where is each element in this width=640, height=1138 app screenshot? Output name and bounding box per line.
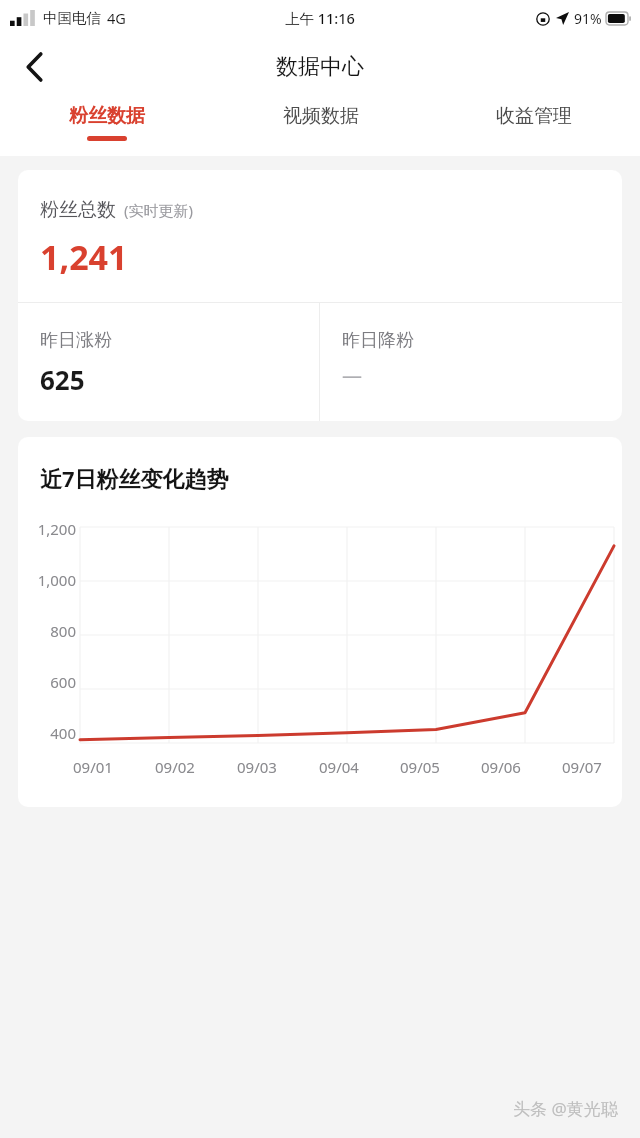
- staticText: 09/05: [400, 757, 440, 777]
- staticText: 收益管理: [496, 104, 572, 128]
- staticText: 1,000: [37, 570, 76, 590]
- staticText: 头条 @黄光聪: [513, 1097, 618, 1120]
- staticText: (实时更新): [124, 200, 194, 220]
- staticText: 昨日降粉: [342, 329, 414, 352]
- staticText: 近7日粉丝变化趋势: [40, 463, 229, 493]
- staticText: 粉丝总数: [40, 198, 116, 222]
- staticText: 09/01: [73, 757, 113, 777]
- staticText: 1,200: [37, 519, 76, 539]
- staticText: 600: [50, 672, 76, 692]
- staticText: 昨日涨粉: [40, 329, 112, 352]
- button[interactable]: 视频数据: [214, 98, 427, 156]
- staticText: 09/02: [155, 757, 195, 777]
- staticText: 4G: [107, 8, 126, 28]
- staticText: 视频数据: [283, 104, 359, 128]
- staticText: 09/03: [237, 757, 277, 777]
- staticText: 中国电信: [43, 9, 101, 27]
- staticText: 09/07: [562, 757, 602, 777]
- staticText: 800: [50, 621, 76, 641]
- button[interactable]: 近7日粉丝变化趋势: [18, 437, 622, 807]
- button[interactable]: 粉丝总数: [18, 170, 622, 421]
- staticText: 09/04: [319, 757, 359, 777]
- button[interactable]: 昨日涨粉: [18, 303, 319, 421]
- button[interactable]: Back: [8, 41, 60, 93]
- button[interactable]: 粉丝数据: [0, 98, 214, 156]
- button[interactable]: 收益管理: [427, 98, 640, 156]
- staticText: 粉丝数据: [69, 104, 145, 128]
- button[interactable]: 昨日降粉: [320, 303, 622, 421]
- staticText: 数据中心: [276, 53, 364, 81]
- staticText: 400: [50, 723, 76, 743]
- staticText: 1,241: [40, 234, 128, 280]
- staticText: —: [342, 362, 362, 389]
- staticText: 09/06: [481, 757, 521, 777]
- staticText: 625: [40, 362, 85, 397]
- staticText: 上午 11:16: [285, 8, 355, 28]
- staticText: 91%: [574, 9, 602, 28]
